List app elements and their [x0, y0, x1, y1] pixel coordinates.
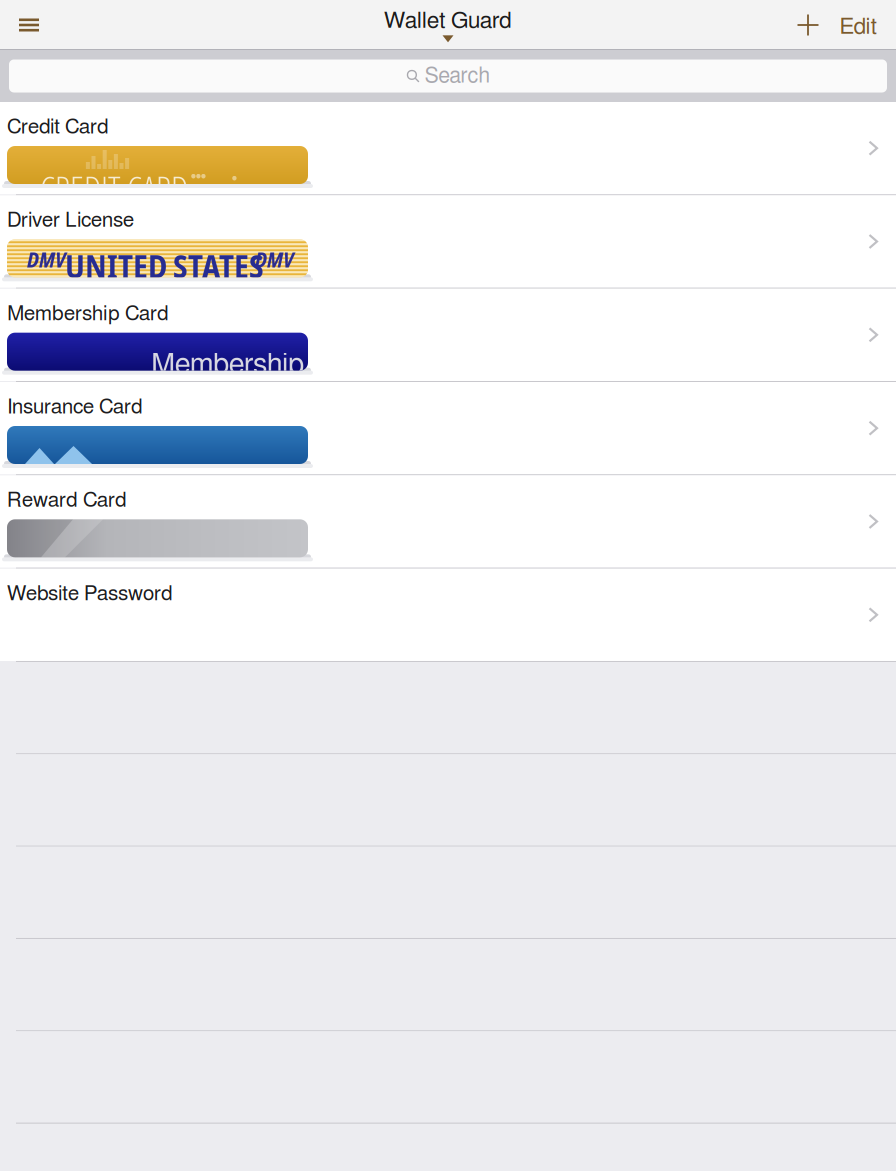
staticText: • — [232, 172, 237, 184]
button[interactable]: Search — [0, 59, 896, 92]
staticText: Edit — [839, 16, 876, 38]
staticText: Insurance Card — [7, 397, 143, 418]
staticText: DMV — [27, 245, 66, 274]
button[interactable]: Insurance Card — [0, 382, 896, 474]
staticText: UNITED STATES — [65, 244, 264, 287]
staticText: DMV — [255, 245, 294, 274]
button[interactable]: Membership Card — [0, 289, 896, 381]
staticText: Driver License — [7, 210, 134, 231]
button[interactable]: Add new item — [786, 0, 830, 50]
staticText: Membership Card — [7, 304, 169, 324]
staticText: Website Password — [7, 584, 173, 604]
button[interactable]: Menu — [0, 0, 58, 50]
button[interactable]: Reward Card — [0, 475, 896, 568]
staticText: Membership — [151, 351, 304, 379]
button[interactable]: Edit — [830, 0, 886, 50]
staticText: Wallet Guard — [384, 10, 512, 32]
staticText: CREDIT CARD — [40, 164, 188, 212]
staticText: Reward Card — [7, 490, 127, 511]
staticText: Credit Card — [7, 117, 109, 138]
button[interactable]: Credit Card — [0, 102, 896, 194]
staticText: Search — [424, 65, 489, 87]
staticText: ••• — [191, 170, 206, 182]
button[interactable]: Driver License — [0, 195, 896, 288]
button[interactable]: Website Password — [0, 569, 896, 661]
